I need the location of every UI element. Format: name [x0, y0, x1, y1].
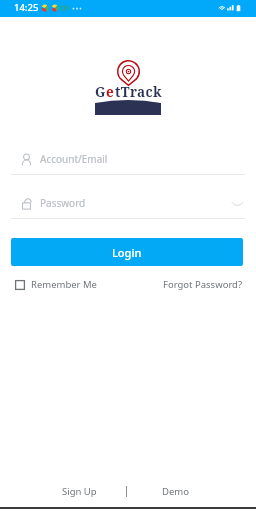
staticText: Account/Email [40, 152, 108, 166]
staticText: Login [112, 245, 142, 260]
staticText: Remember Me [31, 278, 97, 291]
staticText: 14:25 [14, 1, 39, 14]
button[interactable]: Show password [229, 191, 245, 215]
staticText: ··· [72, 0, 83, 15]
staticText: tTrack [115, 83, 162, 101]
staticText: e [106, 83, 115, 101]
button[interactable]: Remember Me [11, 276, 101, 293]
staticText: G [95, 83, 106, 101]
staticText: Demo [162, 485, 189, 498]
staticText: Sign Up [62, 485, 97, 498]
button[interactable]: Forgot Password? [161, 276, 245, 293]
staticText: Password [40, 196, 86, 210]
button[interactable]: Sign Up [50, 482, 109, 501]
staticText: Forgot Password? [163, 278, 243, 291]
button[interactable]: Demo [150, 482, 201, 501]
button[interactable]: Login [11, 238, 243, 266]
